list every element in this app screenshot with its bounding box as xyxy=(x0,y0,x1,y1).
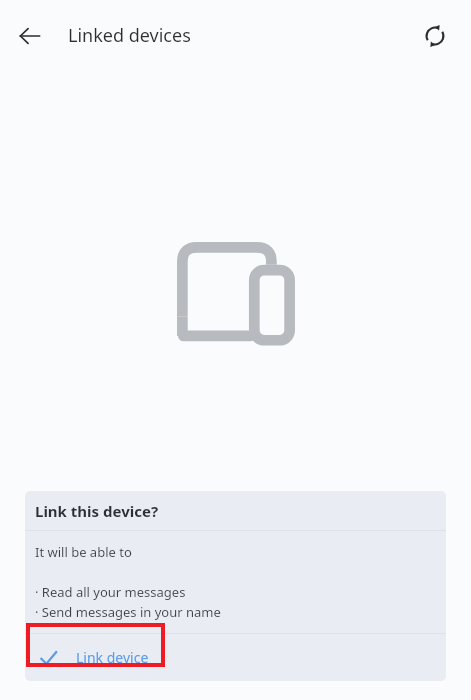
staticText: Link device xyxy=(76,648,149,667)
staticText: It will be able to xyxy=(35,543,132,561)
button[interactable]: Back xyxy=(6,12,54,60)
button[interactable]: Refresh xyxy=(411,12,459,60)
staticText: Linked devices xyxy=(68,23,191,48)
staticText: · Send messages in your name xyxy=(35,603,221,621)
staticText: · Read all your messages xyxy=(35,583,186,601)
staticText: Link this device? xyxy=(35,501,159,521)
button[interactable]: Link device xyxy=(25,634,446,681)
